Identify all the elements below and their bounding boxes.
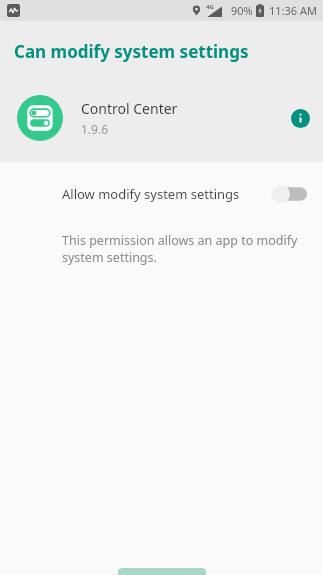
staticText: 11:36 AM bbox=[269, 3, 317, 18]
button[interactable]: Allow modify system settings toggle bbox=[271, 183, 307, 205]
staticText: Can modify system settings bbox=[14, 40, 249, 63]
button[interactable]: Action button bbox=[118, 568, 206, 575]
staticText: Allow modify system settings bbox=[62, 185, 271, 203]
staticText: 4G bbox=[206, 3, 214, 11]
button[interactable]: Control Center bbox=[0, 87, 323, 149]
staticText: Control Center bbox=[81, 99, 178, 118]
button[interactable]: App info bbox=[280, 98, 320, 138]
button[interactable]: Allow modify system settings bbox=[0, 172, 323, 216]
staticText: 90% bbox=[231, 3, 253, 18]
staticText: 1.9.6 bbox=[81, 121, 109, 137]
staticText: This permission allows an app to modify … bbox=[62, 232, 298, 266]
